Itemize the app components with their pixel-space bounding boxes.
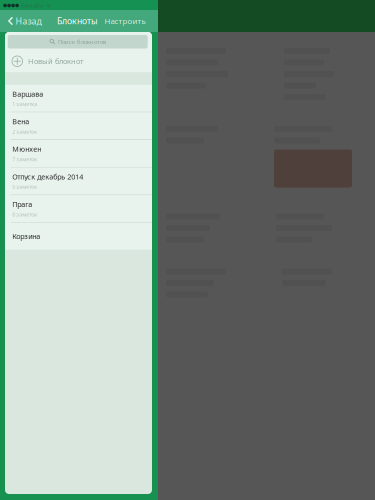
staticText: Настроить [104, 16, 145, 26]
staticText: Корзина [12, 231, 40, 241]
button[interactable]: Новый блокнот [5, 50, 152, 72]
staticText: 5 заметок [12, 183, 37, 190]
staticText: ᯤ [46, 1, 52, 9]
staticText: 8 заметок [12, 211, 37, 218]
button[interactable]: Вена [5, 112, 152, 139]
staticText: 1 заметка [12, 100, 37, 108]
button[interactable]: Отпуск декабрь 2014 [5, 168, 152, 195]
staticText: Блокноты [57, 15, 98, 27]
button[interactable]: Корзина [5, 223, 152, 250]
staticText: Билайн [21, 1, 44, 9]
staticText: 2 заметок [12, 128, 37, 135]
staticText: ●●●● [3, 2, 19, 8]
staticText: Мюнхен [12, 144, 41, 154]
button[interactable]: Варшава [5, 85, 152, 112]
staticText: 7 заметок [12, 156, 37, 163]
staticText: Новый блокнот [28, 56, 83, 66]
button[interactable]: Прага [5, 195, 152, 222]
button[interactable]: Настроить [104, 10, 158, 32]
staticText: Назад [16, 15, 42, 27]
button[interactable]: Мюнхен [5, 140, 152, 167]
staticText: Прага [12, 199, 32, 209]
staticText: Варшава [12, 89, 43, 99]
staticText: Вена [12, 117, 29, 126]
staticText: Поиск блокнотов [58, 38, 106, 46]
button[interactable]: Назад [0, 10, 46, 32]
staticText: Отпуск декабрь 2014 [12, 172, 83, 182]
